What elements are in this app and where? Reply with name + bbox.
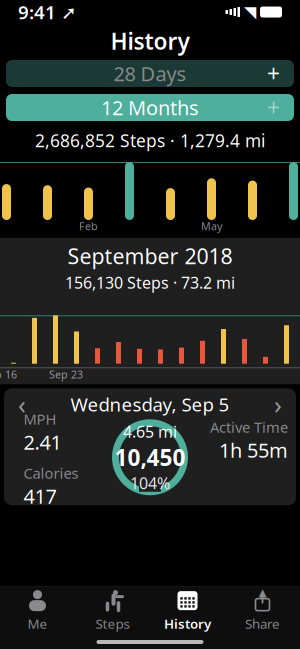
staticText: 156,130 Steps · 73.2 mi [65, 272, 235, 293]
staticText: + [267, 58, 280, 88]
button[interactable]: 28 Days [6, 60, 294, 87]
staticText: History [164, 615, 211, 632]
button[interactable]: Steps [75, 587, 150, 635]
staticText: Me [27, 615, 47, 632]
staticText: Wednesday, Sep 5 [70, 392, 229, 417]
staticText: Steps [95, 615, 129, 632]
staticText: 10,450 [114, 442, 185, 472]
staticText: May [201, 219, 222, 233]
staticText: 2,686,852 Steps · 1,279.4 mi [35, 129, 265, 152]
staticText: › [274, 387, 282, 421]
staticText: History [110, 26, 189, 56]
staticText: 4.65 mi [123, 421, 177, 442]
staticText: + [267, 92, 280, 122]
button[interactable]: History [150, 587, 225, 635]
staticText: 12 Months [101, 94, 199, 121]
staticText: Active Time [210, 417, 288, 437]
button[interactable]: ▲ [225, 587, 300, 635]
staticText: Sep 23 [49, 367, 83, 381]
staticText: ‹ [18, 387, 26, 421]
staticText: Feb [79, 219, 98, 233]
staticText: MPH [23, 409, 56, 429]
button[interactable]: 12 Months [6, 94, 294, 121]
button[interactable]: Me [0, 587, 75, 635]
staticText: 1h 55m [219, 437, 288, 463]
staticText: ▲ [258, 587, 266, 599]
button[interactable]: Next day [264, 392, 292, 416]
staticText: Share [245, 615, 280, 632]
staticText: ◥ [244, 3, 256, 21]
staticText: 9:41 ➚ [18, 0, 77, 24]
staticText: 417 [23, 483, 56, 509]
staticText: Sep 16 [0, 367, 17, 381]
staticText: 104% [130, 472, 170, 493]
staticText: Calories [23, 463, 78, 483]
staticText: 2.41 [23, 429, 61, 455]
staticText: 28 Days [113, 60, 186, 87]
button[interactable]: Previous day [8, 392, 36, 416]
staticText: September 2018 [67, 242, 232, 270]
